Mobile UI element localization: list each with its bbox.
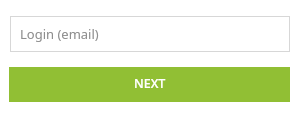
staticText: Login (email) [20, 25, 99, 43]
button[interactable]: NEXT [9, 67, 290, 102]
button[interactable]: Login (email) [10, 16, 290, 52]
staticText: NEXT [134, 75, 166, 92]
